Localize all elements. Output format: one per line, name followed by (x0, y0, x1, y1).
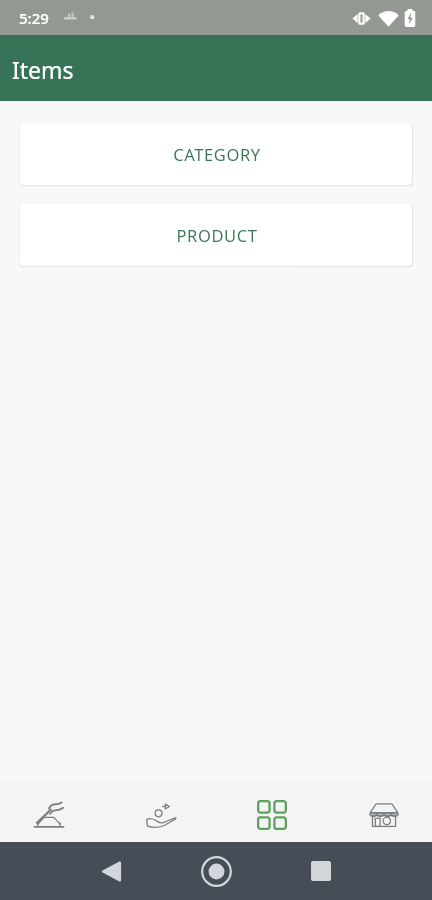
staticText: Items (12, 54, 74, 85)
button[interactable]: Service (112, 780, 209, 842)
staticText: 5:29 (19, 8, 49, 28)
button[interactable]: Store (335, 780, 432, 842)
staticText: CATEGORY (173, 143, 261, 165)
button[interactable]: PRODUCT (20, 204, 412, 266)
button[interactable]: Recents (298, 848, 344, 894)
button[interactable]: Home (193, 848, 239, 894)
button[interactable]: Items (223, 780, 320, 842)
staticText: PRODUCT (176, 224, 258, 246)
button[interactable]: CATEGORY (20, 123, 412, 185)
button[interactable]: Back (88, 848, 134, 894)
button[interactable]: Dishes (0, 780, 97, 842)
